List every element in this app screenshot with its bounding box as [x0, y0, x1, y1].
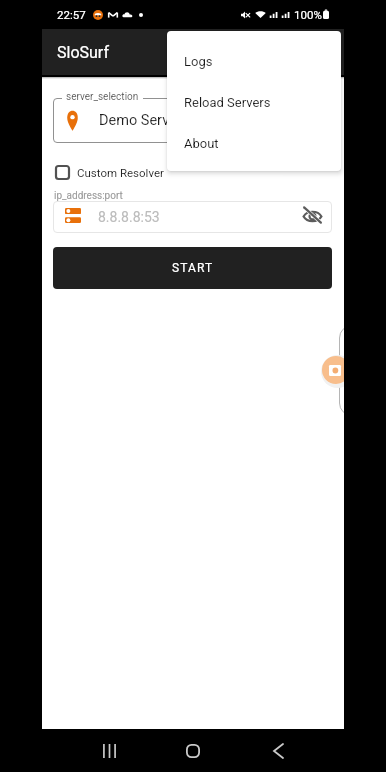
button[interactable]: Back [255, 730, 301, 771]
button[interactable]: START [53, 247, 332, 289]
button[interactable]: Screen recorder [322, 356, 344, 384]
staticText: SloSurf [57, 43, 109, 62]
staticText: server_selection [66, 91, 139, 103]
staticText: 100% [294, 8, 322, 21]
staticText: Logs [184, 54, 213, 69]
staticText: 8.8.8.8:53 [98, 209, 160, 225]
button[interactable]: About [167, 123, 341, 164]
button[interactable]: Custom Resolver [50, 159, 164, 185]
staticText: 22:57 [57, 8, 86, 21]
staticText: Reload Servers [184, 95, 271, 110]
staticText: Demo Server [99, 112, 182, 129]
staticText: Custom Resolver [77, 166, 164, 179]
button[interactable]: Logs [167, 41, 341, 82]
staticText: ip_address:port [54, 190, 123, 202]
button[interactable]: Home [170, 730, 216, 771]
button[interactable]: Demo Server [53, 98, 332, 143]
staticText: About [184, 136, 219, 151]
button[interactable]: Reload Servers [167, 82, 341, 123]
button[interactable]: Recent apps [86, 730, 132, 771]
staticText: START [172, 261, 214, 275]
button[interactable]: Toggle password visibility [299, 201, 325, 229]
